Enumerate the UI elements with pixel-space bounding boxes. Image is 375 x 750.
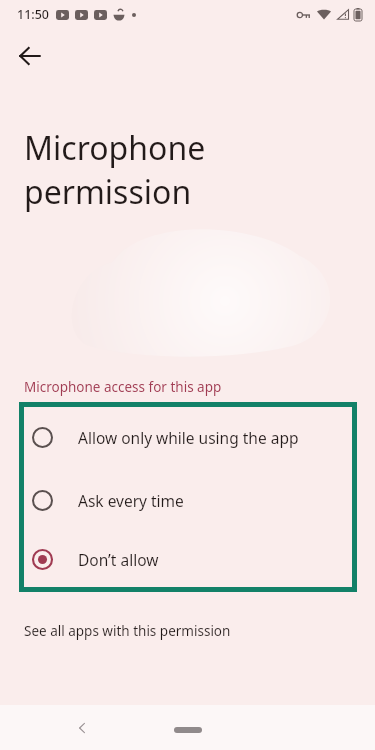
staticText: Microphone [24,126,206,170]
staticText: Ask every time [78,490,184,511]
button[interactable]: Don’t allow [24,532,352,587]
button[interactable]: Back [63,708,103,748]
button[interactable]: See all apps with this permission [0,618,375,644]
staticText: 11:50 [17,6,50,23]
staticText: Don’t allow [78,549,159,570]
staticText: Microphone access for this app [24,378,222,396]
button[interactable]: Home [158,720,218,740]
staticText: Allow only while using the app [78,427,299,448]
staticText: permission [24,170,192,214]
button[interactable]: Back [6,32,54,80]
button[interactable]: Ask every time [24,468,352,532]
staticText: See all apps with this permission [24,622,231,640]
button[interactable]: Allow only while using the app [24,407,352,468]
